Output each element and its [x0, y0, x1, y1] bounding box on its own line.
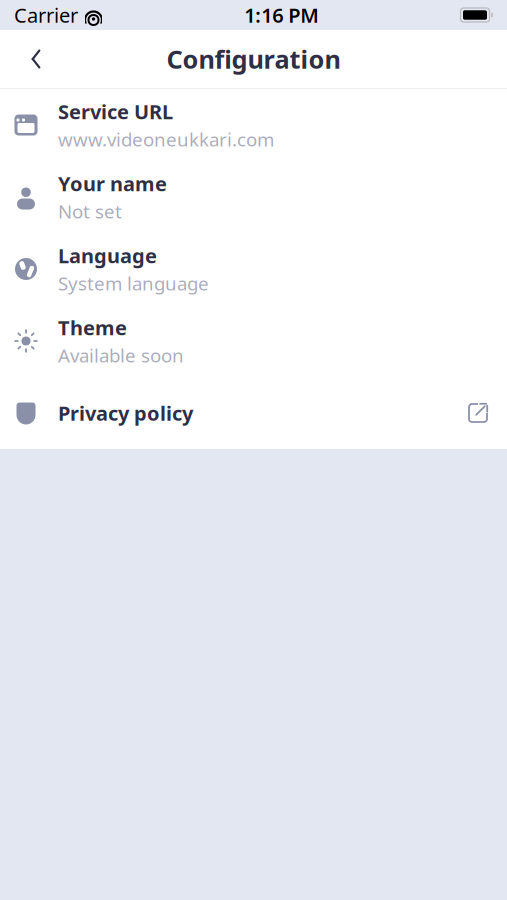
button[interactable]: Theme [0, 305, 507, 377]
staticText: Not set [58, 199, 122, 224]
staticText: Theme [58, 314, 127, 341]
button[interactable]: Privacy policy [0, 377, 507, 449]
staticText: Privacy policy [58, 400, 193, 426]
staticText: Service URL [58, 98, 173, 125]
staticText: Available soon [58, 343, 184, 368]
staticText: System language [58, 271, 209, 296]
staticText: Carrier [14, 2, 78, 28]
staticText: Configuration [166, 42, 340, 76]
staticText: 1:16 PM [244, 2, 319, 28]
staticText: www.videoneukkari.com [58, 127, 274, 152]
staticText: Your name [58, 170, 167, 197]
button[interactable]: Service URL [0, 89, 507, 161]
staticText: Language [58, 242, 157, 269]
button[interactable]: Language [0, 233, 507, 305]
button[interactable]: Back [14, 37, 58, 81]
button[interactable]: Your name [0, 161, 507, 233]
